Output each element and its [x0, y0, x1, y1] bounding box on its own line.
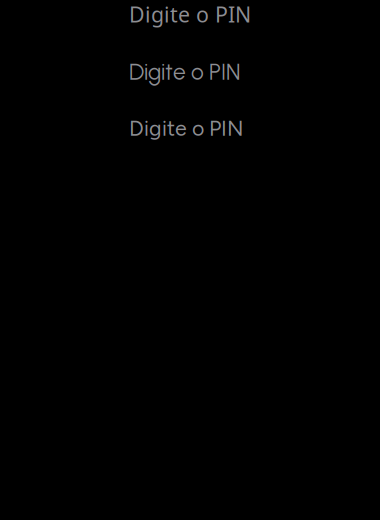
- staticText: Digite o PIN: [129, 0, 251, 28]
- staticText: Digite o PIN: [129, 115, 244, 141]
- staticText: Digite o PIN: [129, 58, 240, 85]
